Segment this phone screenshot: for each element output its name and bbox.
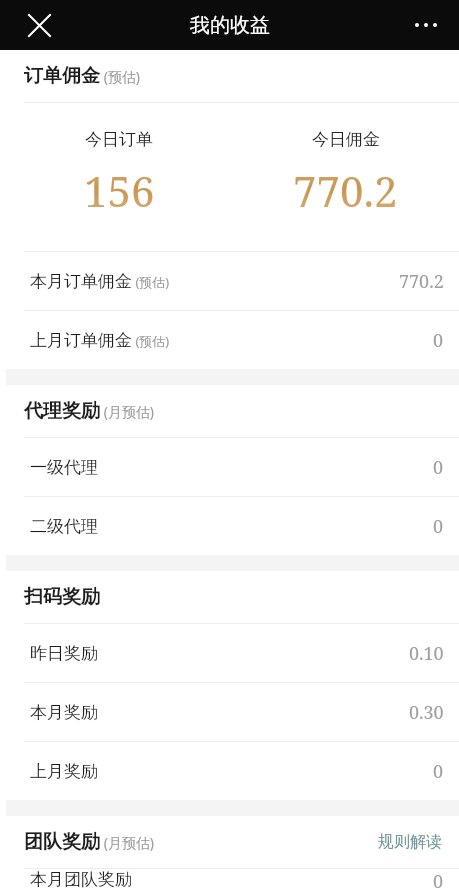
button[interactable]: 今日订单: [6, 103, 232, 251]
staticText: 本月订单佣金 (预估): [30, 271, 170, 292]
button[interactable]: 上月奖励: [6, 742, 459, 800]
staticText: 订单佣金 (预估): [24, 64, 141, 88]
staticText: 本月团队奖励: [30, 869, 132, 890]
staticText: 团队奖励 (月预估): [24, 830, 155, 854]
staticText: 今日订单: [85, 129, 153, 150]
staticText: 0: [433, 455, 444, 480]
button[interactable]: 上月订单佣金 (预估): [6, 311, 459, 369]
staticText: 代理奖励 (月预估): [24, 399, 155, 423]
staticText: 昨日奖励: [30, 643, 98, 664]
staticText: 0: [433, 328, 444, 353]
staticText: 二级代理: [30, 516, 98, 537]
staticText: 规则解读: [378, 832, 442, 852]
button[interactable]: 昨日奖励: [6, 624, 459, 682]
staticText: 0: [433, 514, 444, 539]
button[interactable]: 本月团队奖励: [6, 869, 459, 890]
staticText: 0: [433, 759, 444, 784]
button[interactable]: 二级代理: [6, 497, 459, 555]
staticText: 今日佣金: [312, 129, 380, 150]
button[interactable]: More options: [405, 4, 447, 46]
staticText: 上月订单佣金 (预估): [30, 330, 170, 351]
staticText: 770.2: [293, 162, 398, 219]
staticText: 扫码奖励: [24, 585, 100, 609]
button[interactable]: 一级代理: [6, 438, 459, 496]
staticText: 本月奖励: [30, 702, 98, 723]
staticText: 0: [433, 869, 444, 890]
staticText: 0.30: [409, 700, 444, 725]
button[interactable]: 规则解读: [376, 826, 444, 858]
staticText: 我的收益: [190, 13, 270, 38]
staticText: 770.2: [399, 269, 444, 294]
button[interactable]: Close: [18, 4, 60, 46]
staticText: 一级代理: [30, 457, 98, 478]
button[interactable]: 本月奖励: [6, 683, 459, 741]
staticText: 0.10: [409, 641, 444, 666]
staticText: 156: [84, 162, 155, 219]
button[interactable]: 今日佣金: [232, 103, 459, 251]
staticText: 上月奖励: [30, 761, 98, 782]
button[interactable]: 本月订单佣金 (预估): [6, 252, 459, 310]
